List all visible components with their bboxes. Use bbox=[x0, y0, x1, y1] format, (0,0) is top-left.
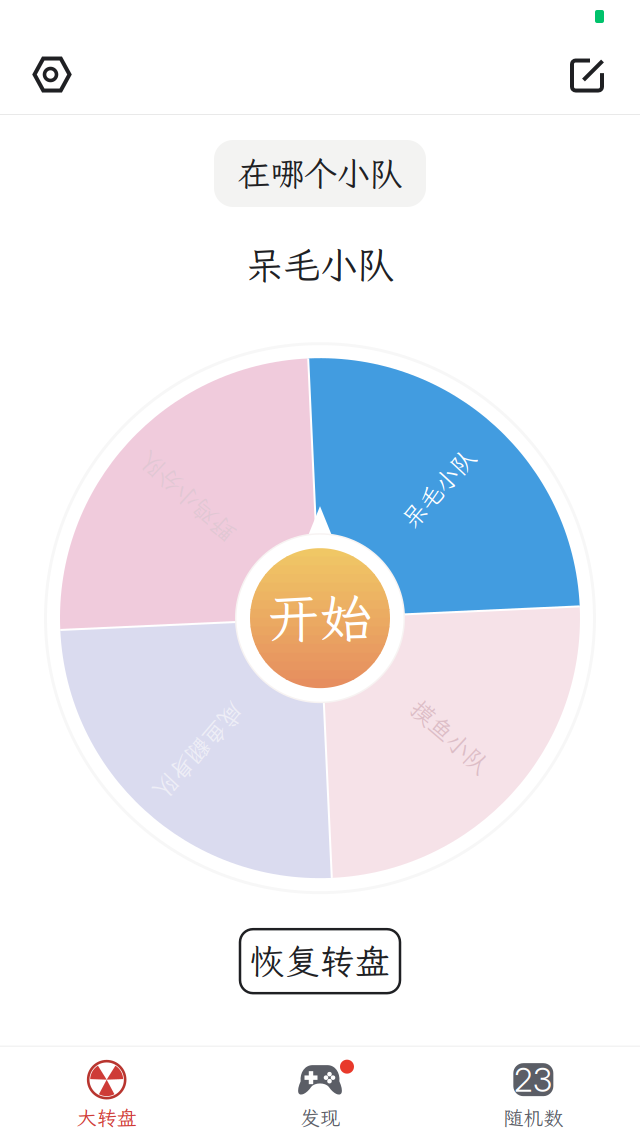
button[interactable]: 恢复转盘 bbox=[240, 929, 400, 993]
staticText: 在哪个小队 bbox=[237, 152, 402, 195]
staticText: 恢复转盘 bbox=[250, 938, 390, 984]
staticText: 摸鱼小队 bbox=[396, 727, 492, 758]
button[interactable]: 大转盘 bbox=[0, 1061, 213, 1131]
staticText: 发现 bbox=[300, 1105, 340, 1131]
staticText: 随机数 bbox=[503, 1105, 563, 1131]
button[interactable]: Settings bbox=[28, 50, 76, 98]
staticText: 呆毛小队 bbox=[246, 240, 394, 289]
button[interactable]: 23 bbox=[427, 1061, 640, 1131]
staticText: 大转盘 bbox=[77, 1105, 137, 1131]
button[interactable]: Compose bbox=[564, 50, 612, 98]
staticText: 23 bbox=[514, 1059, 553, 1100]
staticText: 开始 bbox=[267, 582, 373, 652]
staticText: 咸鱼翻身队 bbox=[133, 730, 253, 761]
button[interactable]: 发现 bbox=[213, 1061, 427, 1131]
staticText: 呆毛小队 bbox=[396, 478, 492, 509]
